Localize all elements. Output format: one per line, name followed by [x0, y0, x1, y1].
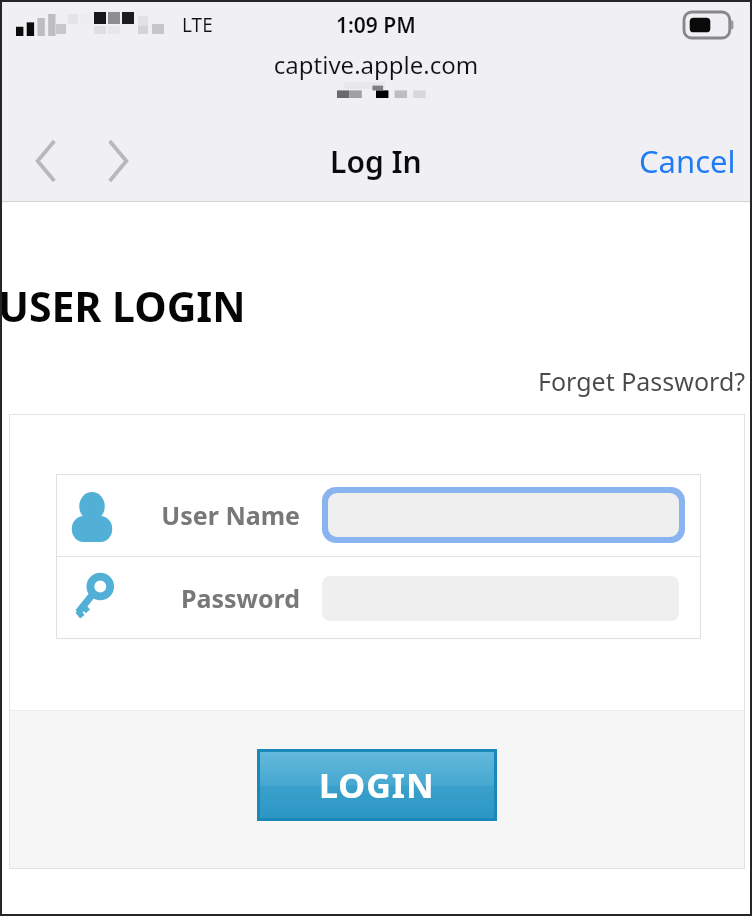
button[interactable]: Back	[18, 133, 74, 189]
staticText: Forget Password?	[538, 364, 746, 398]
staticText: Cancel	[639, 140, 736, 182]
button[interactable]: Cancel	[625, 130, 750, 192]
button[interactable]: LOGIN	[260, 752, 494, 818]
staticText: Password	[128, 581, 300, 615]
button[interactable]	[328, 493, 679, 537]
staticText: captive.apple.com	[2, 48, 750, 81]
button[interactable]: Forget Password?	[2, 364, 750, 398]
staticText: User Name	[128, 498, 300, 532]
staticText: LTE	[182, 12, 213, 38]
button[interactable]: Forward	[90, 133, 146, 189]
staticText: USER LOGIN	[0, 278, 246, 334]
staticText: Log In	[330, 141, 422, 182]
staticText: LOGIN	[319, 762, 435, 808]
staticText: 1:09 PM	[336, 11, 416, 40]
